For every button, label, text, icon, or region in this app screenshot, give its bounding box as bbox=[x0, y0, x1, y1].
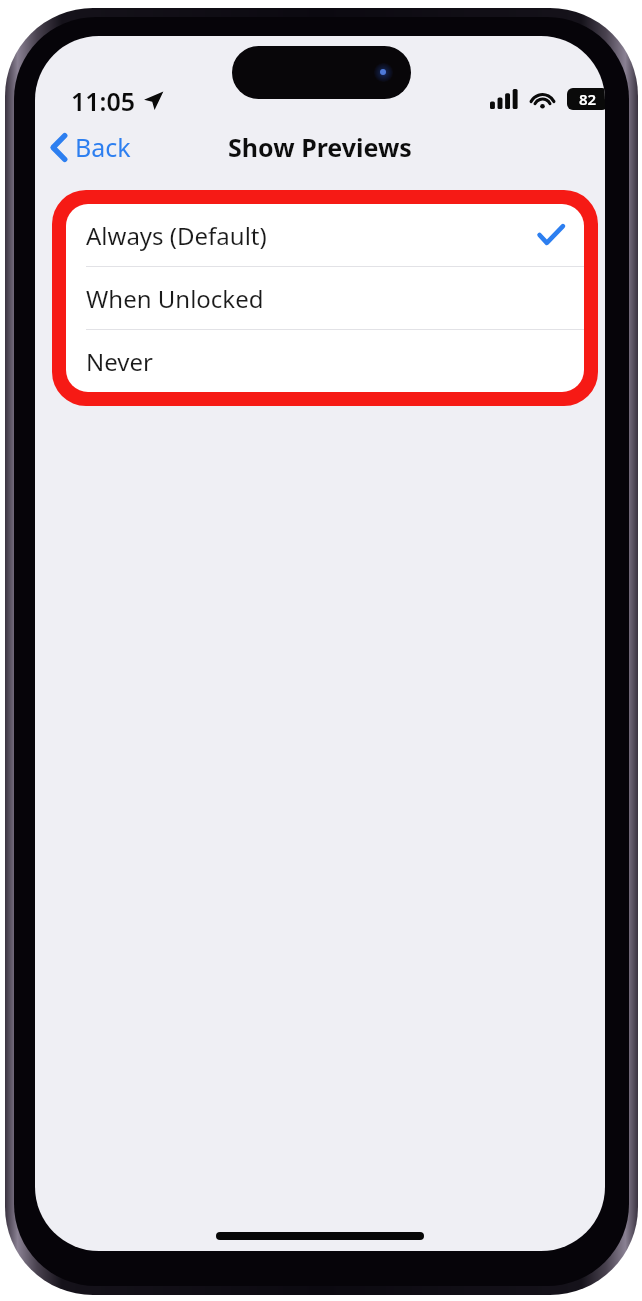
staticText: 82 bbox=[579, 89, 597, 109]
staticText: Never bbox=[86, 345, 153, 378]
button[interactable]: Never bbox=[66, 330, 584, 392]
button[interactable]: Back bbox=[35, 124, 145, 170]
staticText: Back bbox=[75, 130, 131, 164]
button[interactable]: Always (Default) bbox=[66, 204, 584, 266]
button[interactable]: When Unlocked bbox=[66, 267, 584, 329]
staticText: 11:05 bbox=[71, 84, 136, 118]
staticText: Always (Default) bbox=[86, 219, 267, 252]
staticText: Show Previews bbox=[228, 130, 412, 164]
staticText: When Unlocked bbox=[86, 282, 264, 315]
